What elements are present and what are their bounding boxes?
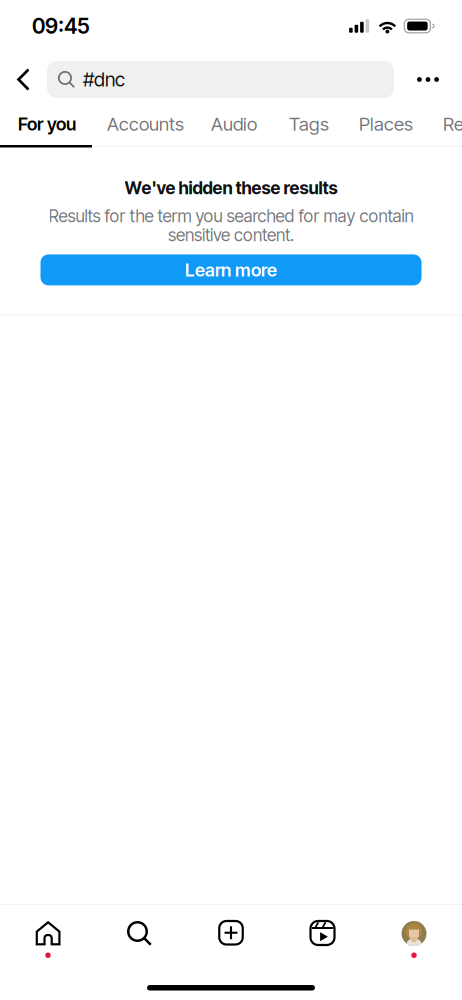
staticText: 09:45 <box>32 13 90 39</box>
button[interactable]: Audio <box>199 103 274 145</box>
staticText: Learn more <box>185 259 277 281</box>
button[interactable]: Back <box>0 61 47 98</box>
button[interactable]: More options <box>394 61 462 98</box>
staticText: #dnc <box>83 68 125 91</box>
staticText: We've hidden these results <box>124 177 337 198</box>
staticText: Accounts <box>107 113 184 135</box>
staticText: sensitive content. <box>168 224 294 245</box>
button[interactable]: For you <box>0 103 92 145</box>
staticText: Audio <box>211 113 257 135</box>
staticText: Places <box>359 113 413 135</box>
button[interactable]: Reels <box>277 905 368 961</box>
button[interactable]: Accounts <box>92 103 199 145</box>
button[interactable]: Search <box>94 905 185 961</box>
button[interactable]: Tags <box>274 103 345 145</box>
staticText: Results for the term you searched for ma… <box>48 205 413 226</box>
button[interactable]: Learn more <box>40 254 421 285</box>
button[interactable]: Home <box>2 905 94 961</box>
button[interactable]: Create <box>185 905 277 961</box>
button[interactable]: Places <box>345 103 429 145</box>
staticText: Tags <box>289 113 329 135</box>
staticText: For you <box>18 113 76 135</box>
staticText: Reels <box>443 113 462 135</box>
button[interactable]: Profile <box>368 905 460 961</box>
button[interactable]: Reels <box>429 103 462 145</box>
